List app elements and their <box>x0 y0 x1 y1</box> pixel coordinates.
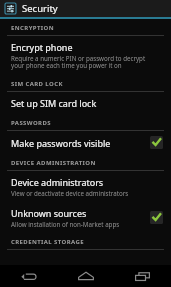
button[interactable]: Back <box>0 265 57 287</box>
staticText: SIM CARD LOCK <box>11 80 63 88</box>
button[interactable]: Enabled <box>150 211 163 224</box>
button[interactable]: Recent apps <box>114 265 171 287</box>
button[interactable]: Enabled <box>150 136 163 149</box>
button[interactable]: Make passwords visible <box>0 131 171 154</box>
staticText: Make passwords visible <box>11 137 111 149</box>
staticText: Security <box>22 2 58 15</box>
staticText: Allow installation of non-Market apps <box>11 220 120 228</box>
staticText: Require a numeric PIN or password to dec… <box>11 54 146 70</box>
staticText: View or deactivate device administrators <box>11 189 129 197</box>
button[interactable]: Encrypt phone <box>0 36 171 75</box>
other: Settings <box>5 3 16 14</box>
staticText: PASSWORDS <box>11 119 51 127</box>
staticText: Device administrators <box>11 176 104 188</box>
staticText: CREDENTIAL STORAGE <box>11 238 84 246</box>
button[interactable]: Device administrators <box>0 171 171 202</box>
staticText: Set up SIM card lock <box>11 97 97 109</box>
button[interactable]: Settings <box>0 0 171 17</box>
staticText: ENCRYPTION <box>11 24 54 32</box>
staticText: Encrypt phone <box>11 41 73 53</box>
button[interactable]: Unknown sources <box>0 202 171 233</box>
staticText: DEVICE ADMINISTRATION <box>11 159 96 167</box>
staticText: Unknown sources <box>11 207 87 219</box>
button[interactable]: Home <box>57 265 114 287</box>
button[interactable]: Set up SIM card lock <box>0 92 171 114</box>
